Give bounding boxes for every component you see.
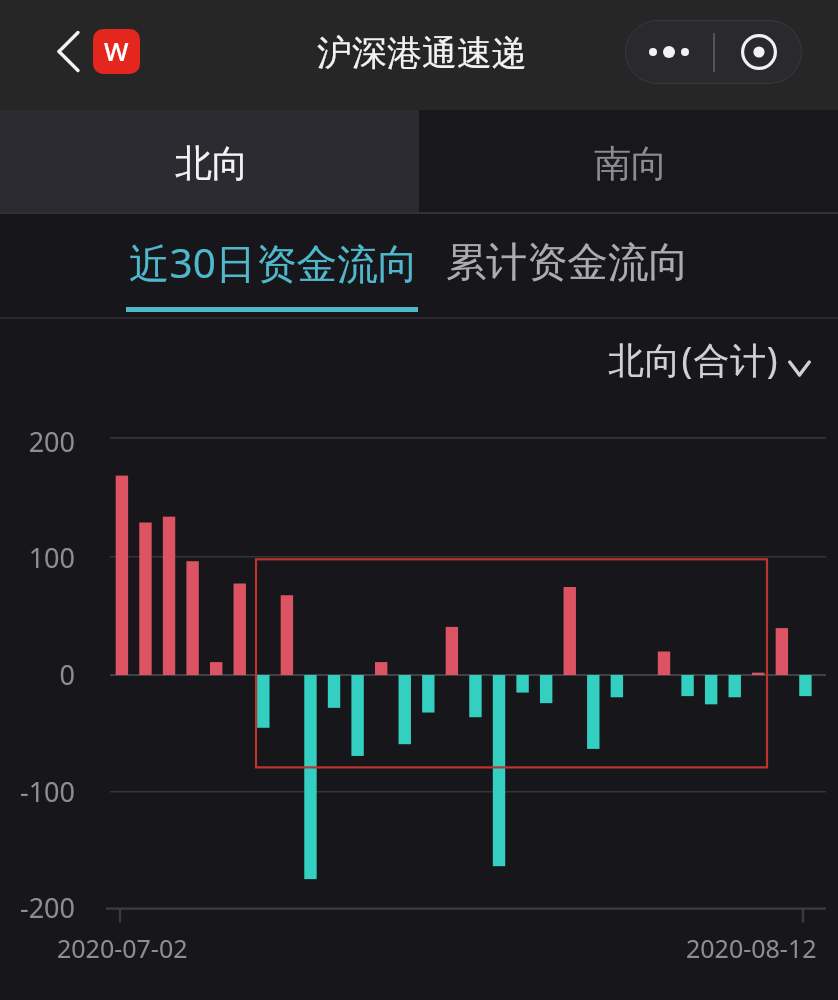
button[interactable]: 南向 bbox=[419, 110, 838, 214]
staticText: 0 bbox=[0, 656, 75, 693]
staticText: 北向(合计) bbox=[608, 335, 779, 384]
staticText: 北向 bbox=[175, 140, 249, 187]
button[interactable]: WeChat mini program logo bbox=[93, 29, 140, 74]
staticText: W bbox=[104, 33, 129, 68]
staticText: 近30日资金流向 bbox=[129, 235, 419, 290]
staticText: 200 bbox=[0, 423, 75, 460]
button[interactable]: Close mini program bbox=[715, 20, 802, 84]
staticText: -100 bbox=[0, 773, 75, 810]
button[interactable]: 近30日资金流向 bbox=[129, 229, 419, 296]
button[interactable]: Back bbox=[40, 25, 94, 85]
staticText: 2020-07-02 bbox=[57, 931, 188, 965]
staticText: 累计资金流向 bbox=[446, 237, 689, 288]
button[interactable]: 北向(合计) bbox=[608, 335, 811, 384]
staticText: 2020-08-12 bbox=[686, 931, 817, 965]
button[interactable]: 累计资金流向 bbox=[446, 231, 689, 294]
staticText: 沪深港通速递 bbox=[317, 31, 527, 75]
button[interactable]: 北向 bbox=[0, 110, 419, 214]
button[interactable]: More options bbox=[625, 20, 713, 84]
staticText: 南向 bbox=[594, 140, 668, 187]
staticText: -200 bbox=[0, 889, 75, 926]
staticText: 100 bbox=[0, 539, 75, 576]
